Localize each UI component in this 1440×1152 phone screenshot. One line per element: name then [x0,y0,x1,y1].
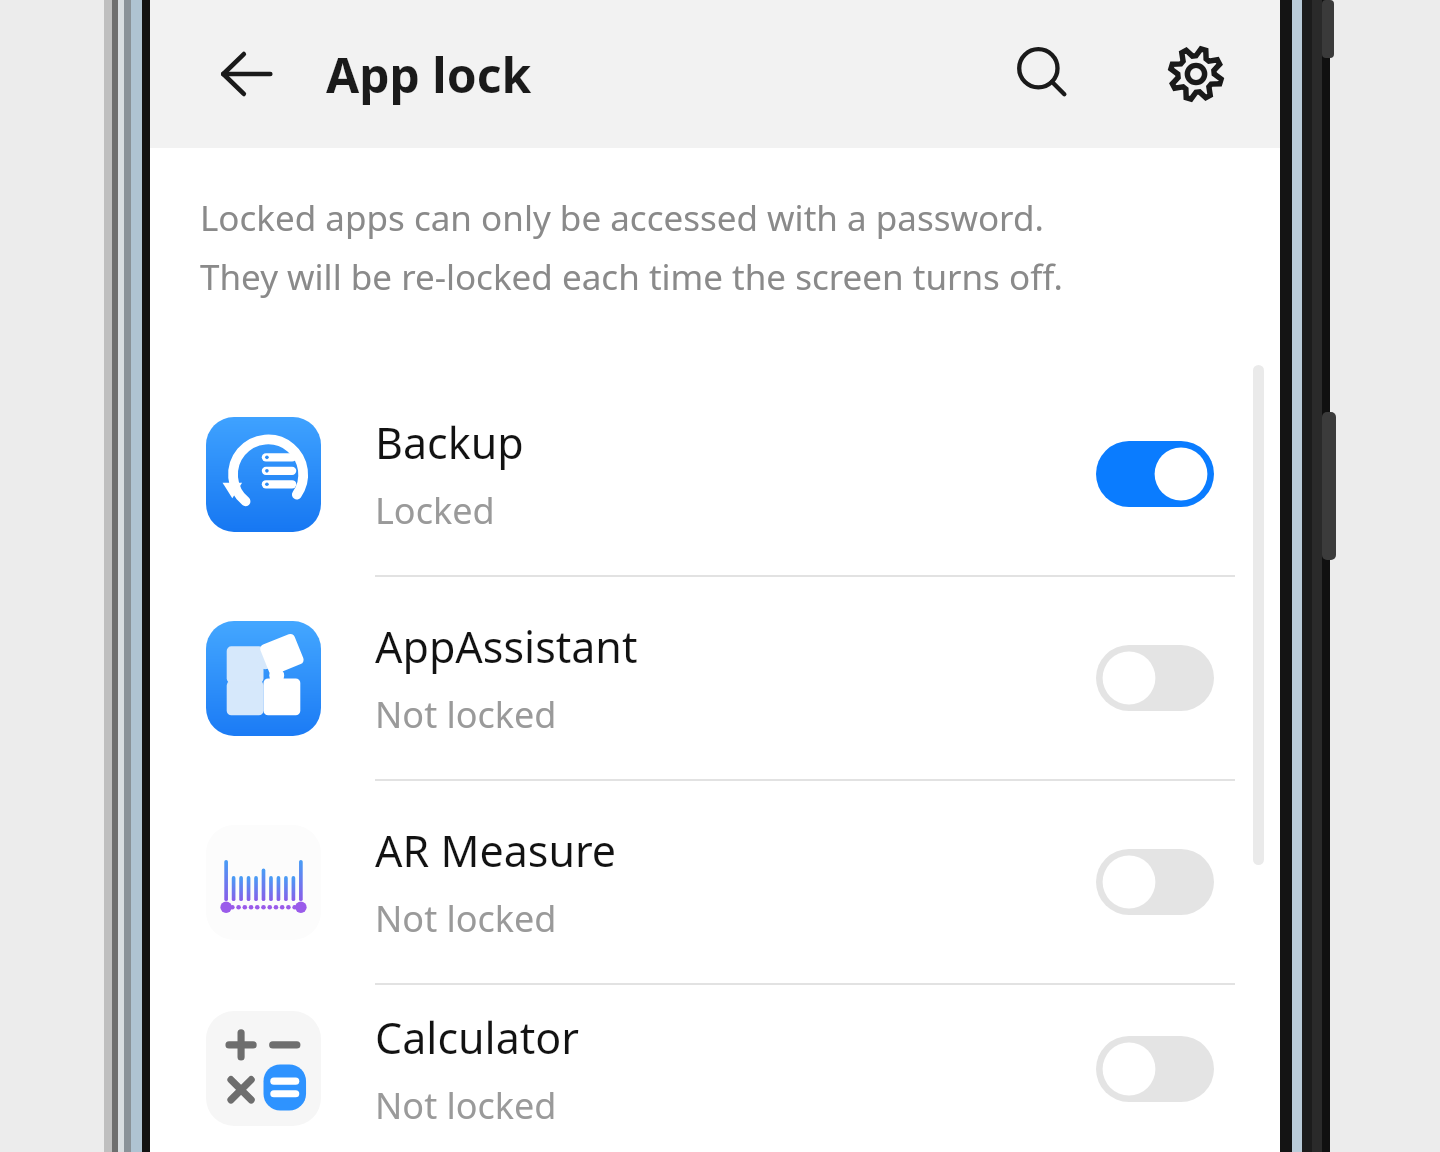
staticText: App lock [326,42,532,107]
staticText: Not locked [375,894,557,943]
button[interactable]: AR Measure [150,781,1280,983]
button[interactable]: Lock off [1096,849,1214,915]
button[interactable]: Calculator [150,985,1280,1152]
button[interactable]: Lock off [1096,1036,1214,1102]
button[interactable]: Search [995,26,1091,122]
button[interactable]: Lock off [1096,645,1214,711]
staticText: Locked [375,486,495,535]
staticText: Not locked [375,690,557,739]
button[interactable]: Lock on [1096,441,1214,507]
button[interactable]: AppAssistant [150,577,1280,779]
staticText: Backup [375,413,524,472]
staticText: AppAssistant [375,617,638,676]
staticText: Locked apps can only be accessed with a … [200,194,1063,301]
button[interactable]: Backup [150,373,1280,575]
button[interactable]: Back [200,28,292,120]
staticText: AR Measure [375,821,617,880]
staticText: Calculator [375,1008,580,1067]
button[interactable]: Settings [1148,26,1244,122]
staticText: Not locked [375,1081,557,1130]
